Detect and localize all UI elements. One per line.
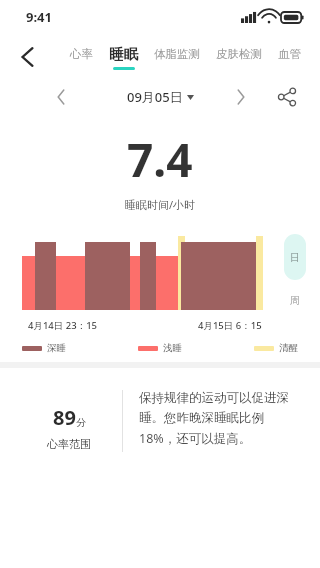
staticText: 心率范围	[47, 437, 91, 451]
staticText: 心率	[70, 47, 93, 61]
button[interactable]: 皮肤检测	[208, 47, 270, 68]
staticText: 9:41	[26, 8, 52, 26]
staticText: 体脂监测	[154, 47, 200, 61]
button[interactable]: 09月05日	[127, 88, 194, 106]
staticText: 清醒	[279, 342, 298, 354]
button[interactable]: Share	[272, 82, 302, 112]
button[interactable]: 体脂监测	[146, 47, 208, 68]
button[interactable]: 深睡	[22, 342, 66, 354]
button[interactable]: 周	[284, 290, 306, 310]
staticText: 睡眠	[109, 45, 138, 63]
button[interactable]: 浅睡	[138, 342, 182, 354]
staticText: 分	[76, 416, 86, 429]
button[interactable]: 清醒	[254, 342, 298, 354]
button[interactable]: 睡眠	[101, 45, 146, 70]
staticText: 7.4	[127, 128, 193, 191]
staticText: 保持规律的运动可以促进深睡。您昨晚深睡眠比例18%，还可以提高。	[139, 390, 296, 446]
staticText: 血管	[278, 47, 301, 61]
staticText: 89	[53, 404, 76, 431]
staticText: 周	[290, 294, 300, 307]
button[interactable]: Back	[10, 40, 44, 74]
staticText: 深睡	[47, 342, 66, 354]
staticText: 09月05日	[127, 88, 183, 106]
staticText: 皮肤检测	[216, 47, 262, 61]
button[interactable]: 日	[284, 234, 306, 280]
staticText: 日	[290, 251, 300, 264]
button[interactable]: 血管	[270, 47, 309, 68]
staticText: 4月14日 23：15	[28, 319, 98, 332]
button[interactable]: Previous day	[48, 84, 74, 110]
staticText: 浅睡	[163, 342, 182, 354]
staticText: 4月15日 6：15	[198, 319, 262, 332]
button[interactable]: Next day	[228, 84, 254, 110]
staticText: 睡眠时间/小时	[125, 197, 196, 212]
button[interactable]: 心率	[62, 47, 101, 68]
